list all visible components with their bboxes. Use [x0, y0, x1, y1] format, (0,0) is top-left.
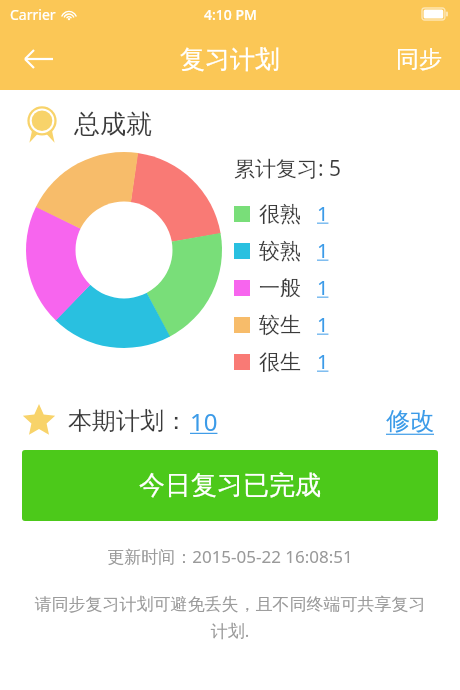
staticText: 1: [317, 200, 329, 227]
staticText: 1: [317, 311, 329, 338]
staticText: 总成就: [74, 108, 152, 141]
staticText: Carrier: [10, 5, 56, 24]
staticText: 1: [317, 274, 329, 301]
button[interactable]: 修改: [382, 402, 438, 440]
staticText: 10: [190, 405, 218, 438]
button[interactable]: Back: [14, 35, 62, 83]
button[interactable]: 一般: [234, 269, 329, 306]
button[interactable]: 很生: [234, 343, 329, 380]
staticText: 4:10 PM: [204, 5, 257, 24]
staticText: 一般: [259, 275, 301, 301]
staticText: 复习计划: [180, 44, 280, 75]
staticText: 累计复习: 5: [234, 154, 342, 183]
button[interactable]: 较生: [234, 306, 329, 343]
button[interactable]: 较熟: [234, 232, 329, 269]
staticText: 1: [317, 237, 329, 264]
staticText: 1: [317, 348, 329, 375]
staticText: 较熟: [259, 238, 301, 264]
staticText: 今日复习已完成: [139, 469, 321, 502]
staticText: 本期计划：: [68, 406, 188, 436]
button[interactable]: 今日复习已完成: [22, 450, 438, 521]
staticText: 很熟: [259, 201, 301, 227]
button[interactable]: 10: [188, 405, 220, 438]
staticText: 更新时间：2015-05-22 16:08:51: [0, 545, 460, 568]
button[interactable]: 很熟: [234, 195, 329, 232]
staticText: 很生: [259, 349, 301, 375]
staticText: 请同步复习计划可避免丢失，且不同终端可共享复习计划.: [28, 594, 432, 642]
staticText: 较生: [259, 312, 301, 338]
staticText: 同步: [396, 45, 442, 74]
staticText: 修改: [386, 406, 434, 436]
button[interactable]: 同步: [390, 39, 448, 80]
